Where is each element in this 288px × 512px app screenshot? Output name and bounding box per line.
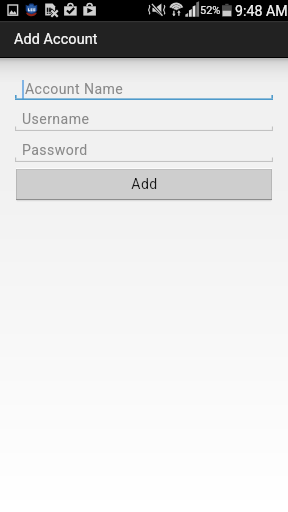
staticText: Username — [22, 111, 90, 128]
staticText: 9:48 AM — [235, 3, 288, 20]
button[interactable]: Add — [16, 169, 272, 200]
button[interactable]: Password — [15, 131, 273, 162]
staticText: Account Name — [25, 81, 124, 98]
staticText: Password — [22, 142, 88, 159]
staticText: 52% — [200, 4, 221, 17]
staticText: Add — [131, 176, 158, 193]
button[interactable]: Username — [15, 100, 273, 131]
staticText: Add Account — [14, 31, 98, 48]
button[interactable]: Account Name — [15, 69, 273, 100]
